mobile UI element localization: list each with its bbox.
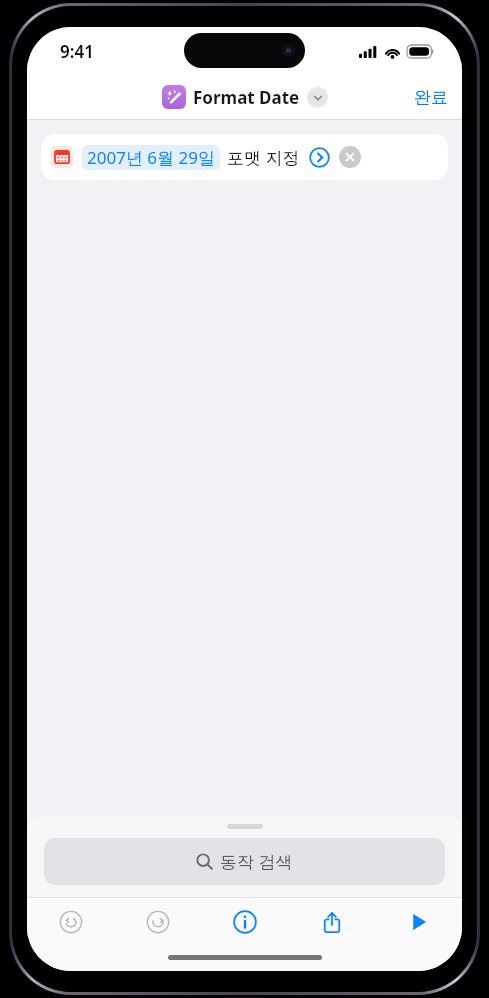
button[interactable]: Redo [114, 898, 201, 945]
button[interactable]: Share [288, 898, 375, 945]
staticText: 동작 검색 [220, 850, 293, 873]
staticText: 2007년 6월 29일 [87, 146, 215, 169]
button[interactable]: Remove action [339, 146, 361, 168]
staticText: Format Date [193, 86, 300, 109]
button[interactable]: Undo [27, 898, 114, 945]
button[interactable]: Details [201, 898, 288, 945]
button[interactable]: 2007년 6월 29일 [41, 134, 448, 180]
button[interactable]: Show more options [307, 145, 331, 169]
button[interactable]: Run shortcut [375, 898, 462, 945]
staticText: 완료 [414, 87, 448, 108]
staticText: 9:41 [60, 40, 94, 63]
button[interactable]: 완료 [400, 81, 462, 114]
button[interactable]: 동작 검색 [44, 838, 445, 885]
button[interactable]: Format Date [160, 83, 330, 111]
staticText: 포맷 지정 [227, 146, 300, 169]
